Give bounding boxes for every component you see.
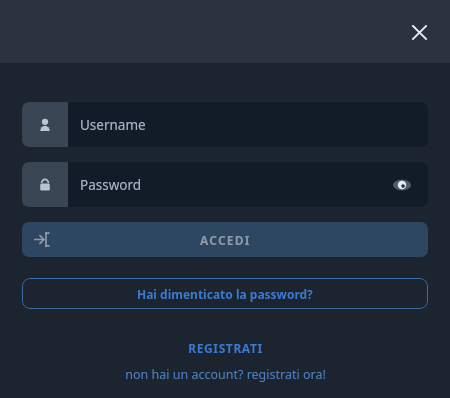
button[interactable]: Toggle password visibility <box>390 173 414 197</box>
staticText: Hai dimenticato la password? <box>137 286 313 302</box>
button[interactable]: Hai dimenticato la password? <box>22 278 428 309</box>
button[interactable]: ACCEDI <box>22 222 428 257</box>
button[interactable]: Username <box>22 102 428 147</box>
staticText: ACCEDI <box>200 232 251 248</box>
button[interactable]: REGISTRATI <box>0 340 450 383</box>
button[interactable]: Password <box>22 162 428 207</box>
button[interactable]: Close <box>398 11 440 53</box>
staticText: Password <box>80 176 390 194</box>
staticText: REGISTRATI <box>188 340 263 356</box>
staticText: Username <box>80 116 428 134</box>
staticText: non hai un account? registrati ora! <box>125 366 326 383</box>
